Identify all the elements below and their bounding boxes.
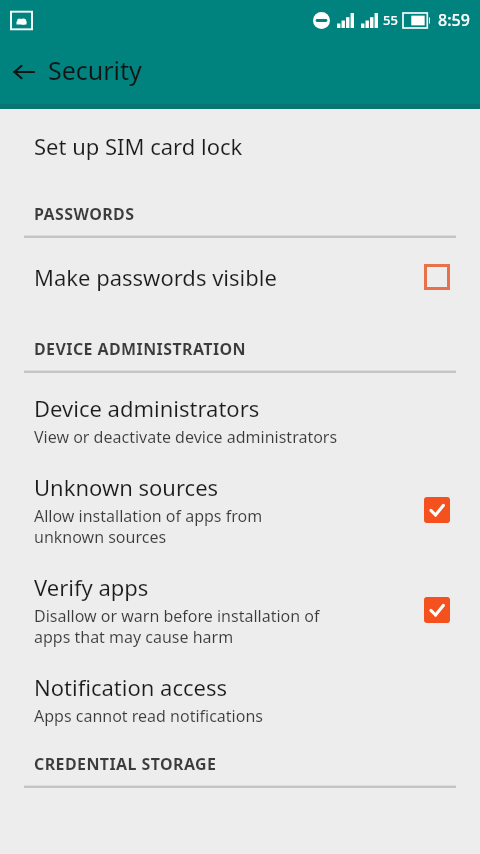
button[interactable]: Notification access: [0, 658, 480, 739]
staticText: Verify apps: [34, 572, 149, 602]
staticText: Unknown sources: [34, 472, 219, 502]
staticText: Allow installation of apps from unknown …: [34, 505, 263, 548]
button[interactable]: Make passwords visible: [0, 238, 480, 316]
staticText: Disallow or warn before installation of …: [34, 605, 320, 648]
button[interactable]: Checked: [420, 593, 454, 627]
staticText: Make passwords visible: [34, 262, 277, 292]
button[interactable]: Back: [0, 48, 48, 96]
button[interactable]: Unchecked: [420, 260, 454, 294]
button[interactable]: Verify apps: [0, 558, 480, 658]
staticText: View or deactivate device administrators: [34, 426, 338, 448]
staticText: Set up SIM card lock: [34, 131, 243, 161]
button[interactable]: Device administrators: [0, 373, 480, 458]
button[interactable]: Set up SIM card lock: [0, 109, 480, 181]
staticText: PASSWORDS: [34, 203, 135, 225]
staticText: Security: [48, 53, 142, 87]
staticText: 55: [383, 11, 398, 29]
button[interactable]: Unknown sources: [0, 458, 480, 558]
staticText: Apps cannot read notifications: [34, 705, 263, 727]
staticText: CREDENTIAL STORAGE: [34, 753, 217, 775]
staticText: Notification access: [34, 672, 227, 702]
staticText: DEVICE ADMINISTRATION: [34, 338, 247, 360]
button[interactable]: Checked: [420, 493, 454, 527]
staticText: Device administrators: [34, 393, 260, 423]
staticText: 8:59: [438, 9, 470, 31]
